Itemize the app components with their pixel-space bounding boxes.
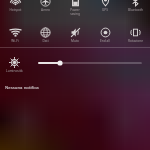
staticText: Aereo (41, 8, 50, 12)
staticText: Muto (71, 39, 79, 43)
button[interactable]: Power saving (60, 0, 90, 21)
staticText: Hotspot (9, 8, 22, 12)
button[interactable]: Aereo (30, 0, 60, 21)
staticText: Bluetooth (128, 8, 143, 12)
button[interactable] (0, 58, 150, 68)
staticText: GPS (102, 8, 108, 12)
button[interactable]: Luminosità (0, 56, 28, 76)
button[interactable]: GPS (90, 0, 120, 21)
staticText: Luminosità (6, 69, 23, 73)
button[interactable]: Bluetooth (120, 0, 150, 21)
button[interactable]: End all (90, 25, 120, 46)
staticText: Nessuna notifica (5, 84, 39, 90)
button[interactable]: Muto (60, 25, 90, 46)
staticText: Dati (42, 39, 49, 43)
button[interactable]: Wi-Fi (0, 25, 30, 46)
staticText: End all (100, 39, 110, 43)
button[interactable]: Dati (30, 25, 60, 46)
staticText: Wi-Fi (11, 39, 19, 43)
staticText: Power saving (70, 8, 80, 16)
staticText: Rotazione (128, 39, 143, 43)
button[interactable]: Rotazione (120, 25, 150, 46)
button[interactable]: Hotspot (0, 0, 30, 21)
